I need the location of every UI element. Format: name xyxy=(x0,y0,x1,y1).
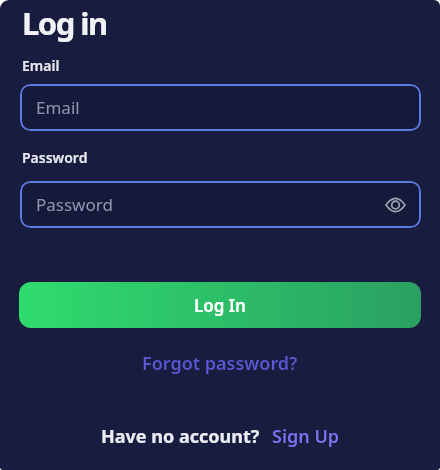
button[interactable]: Forgot password? xyxy=(142,351,298,376)
staticText: Log In xyxy=(194,294,246,317)
button[interactable]: Email xyxy=(20,84,421,131)
staticText: Have no account? xyxy=(101,424,260,449)
staticText: Password xyxy=(36,193,113,216)
staticText: Email xyxy=(22,56,60,75)
button[interactable]: Log In xyxy=(19,282,421,328)
staticText: Sign Up xyxy=(272,424,340,449)
staticText: Password xyxy=(22,148,88,167)
staticText: Email xyxy=(36,96,80,119)
staticText: Forgot password? xyxy=(142,351,298,376)
staticText: Log in xyxy=(22,2,107,44)
button[interactable]: Password xyxy=(20,181,421,228)
button[interactable]: Sign Up xyxy=(272,424,340,449)
